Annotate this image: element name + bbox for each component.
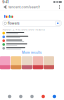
staticText: About 2,410,000,000 results	[2, 28, 44, 31]
button[interactable]: Back	[1, 4, 8, 10]
button[interactable]	[2, 46, 62, 50]
staticText: flowers	[8, 21, 20, 25]
button[interactable]: More results	[0, 50, 64, 55]
button[interactable]	[2, 31, 62, 35]
button[interactable]: Tabs	[26, 93, 38, 100]
staticText: More results	[22, 51, 42, 54]
staticText: tencent.com/search	[8, 5, 40, 9]
button[interactable]: Bookmarks	[38, 93, 49, 100]
staticText: 9:41	[2, 0, 8, 4]
button[interactable]: Discover	[15, 93, 26, 100]
button[interactable]: More	[57, 4, 63, 10]
button[interactable]: Account	[49, 93, 60, 100]
button[interactable]	[2, 39, 62, 43]
button[interactable]	[2, 43, 62, 46]
button[interactable]	[2, 35, 62, 39]
button[interactable]: Home	[4, 93, 15, 100]
